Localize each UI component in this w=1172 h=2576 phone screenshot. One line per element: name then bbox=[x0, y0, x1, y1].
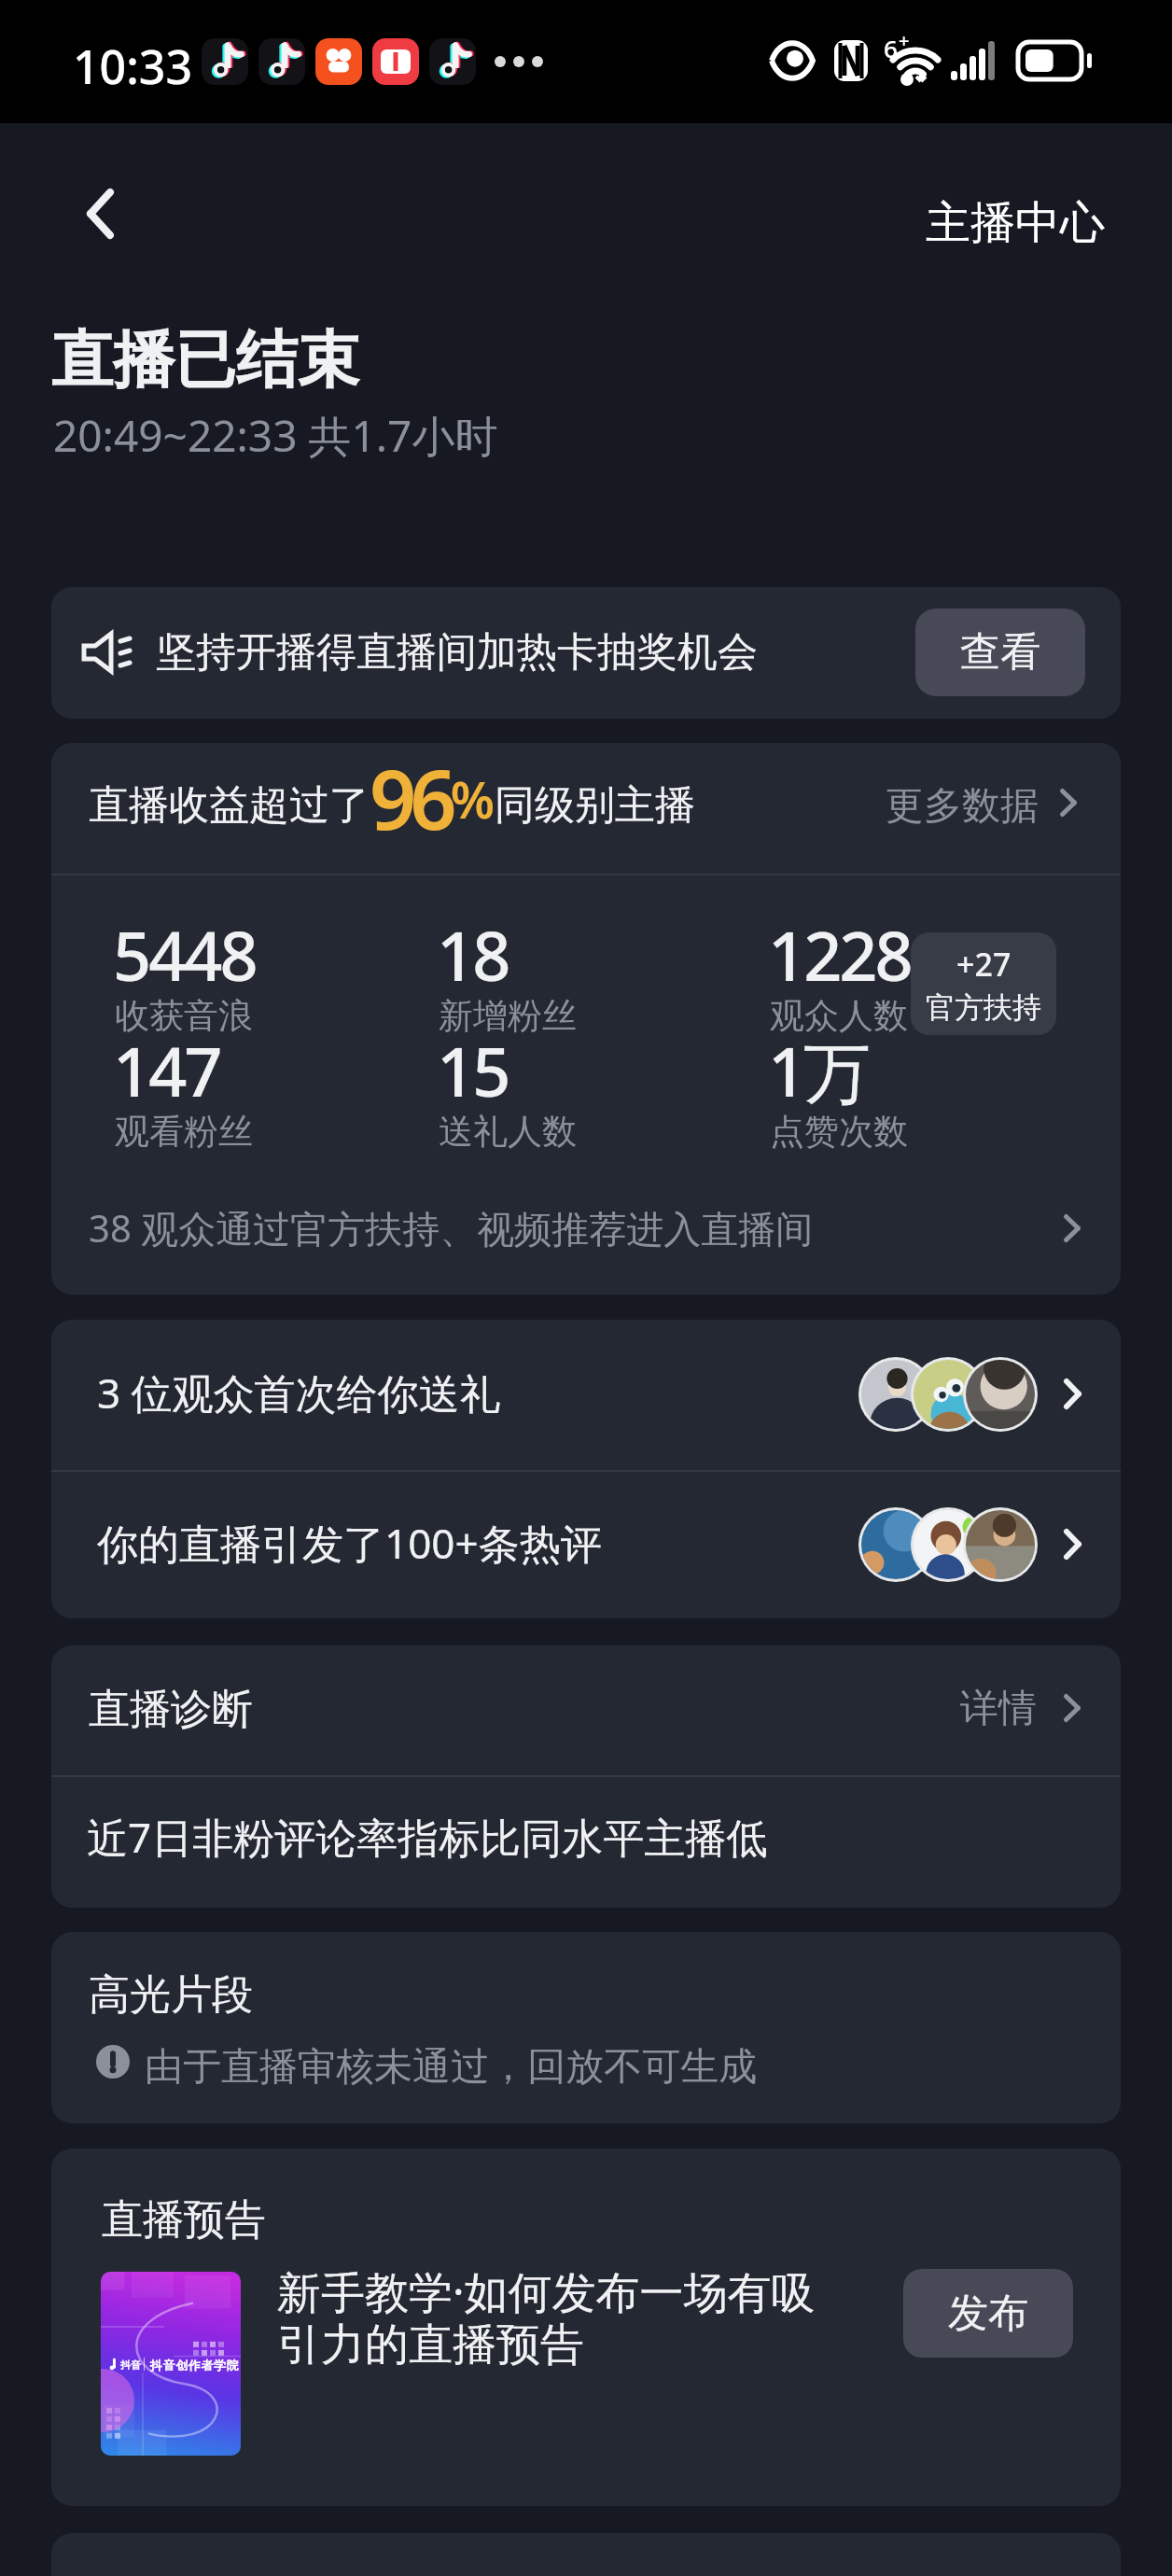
staticText: 官方扶持 bbox=[926, 989, 1041, 1026]
staticText: 3 位观众首次给你送礼 bbox=[97, 1365, 501, 1421]
staticText: + bbox=[899, 28, 910, 53]
staticText: 点赞次数 bbox=[770, 1110, 908, 1154]
staticText: 近7日非粉评论率指标比同水平主播低 bbox=[87, 1809, 768, 1865]
staticText: 发布 bbox=[948, 2289, 1028, 2339]
staticText: 主播中心 bbox=[926, 195, 1105, 251]
staticText: 直播预告 bbox=[102, 2194, 266, 2246]
staticText: 更多数据 bbox=[886, 782, 1039, 831]
staticText: 抖音创作者学院 bbox=[150, 2358, 240, 2373]
staticText: 你的直播引发了100+条热评 bbox=[97, 1515, 602, 1571]
staticText: 观看粉丝 bbox=[115, 1110, 253, 1154]
staticText: 1228 bbox=[768, 909, 911, 1001]
staticText: 1万 bbox=[768, 1025, 869, 1116]
button[interactable]: 查看 bbox=[915, 609, 1085, 696]
button[interactable]: 直播收益超过了96%同级别主播 bbox=[51, 743, 1121, 874]
button[interactable]: 发布 bbox=[903, 2269, 1073, 2358]
staticText: 抖音 bbox=[120, 2359, 141, 2372]
staticText: 18 bbox=[437, 909, 509, 1001]
staticText: +27 bbox=[956, 943, 1012, 986]
staticText: 38 观众通过官方扶持、视频推荐进入直播间 bbox=[89, 1202, 814, 1253]
staticText: 详情 bbox=[960, 1685, 1037, 1733]
button[interactable]: 主播中心 bbox=[926, 195, 1105, 251]
button[interactable]: Back bbox=[56, 174, 144, 254]
staticText: 10:33 bbox=[73, 35, 192, 98]
staticText: 高光片段 bbox=[89, 1969, 253, 2021]
button[interactable]: 你的直播引发了100+条热评 bbox=[51, 1472, 1121, 1618]
staticText: 观众人数 bbox=[770, 994, 908, 1038]
button[interactable]: 38 观众通过官方扶持、视频推荐进入直播间 bbox=[51, 1178, 1121, 1295]
staticText: 20:49~22:33 共1.7小时 bbox=[53, 406, 498, 465]
staticText: 查看 bbox=[960, 627, 1040, 678]
button[interactable]: 3 位观众首次给你送礼 bbox=[51, 1320, 1121, 1470]
staticText: 5448 bbox=[113, 909, 256, 1001]
staticText: 直播已结束 bbox=[51, 321, 359, 399]
staticText: 新增粉丝 bbox=[439, 994, 577, 1038]
button[interactable]: 坚持开播得直播间加热卡抽奖机会 bbox=[51, 587, 1121, 719]
button[interactable]: 高光片段 bbox=[51, 1932, 1121, 2123]
button[interactable]: 直播诊断 bbox=[51, 1645, 1121, 1775]
staticText: 6 bbox=[884, 32, 898, 64]
staticText: 直播诊断 bbox=[89, 1684, 253, 1735]
staticText: 15 bbox=[437, 1025, 509, 1116]
staticText: 坚持开播得直播间加热卡抽奖机会 bbox=[156, 627, 758, 678]
staticText: 直播收益超过了96%同级别主播 bbox=[89, 743, 695, 854]
staticText: 147 bbox=[113, 1025, 220, 1116]
staticText: 由于直播审核未通过，回放不可生成 bbox=[145, 2043, 757, 2092]
button[interactable]: 近7日非粉评论率指标比同水平主播低 bbox=[51, 1777, 1121, 1908]
staticText: 收获音浪 bbox=[115, 994, 253, 1038]
staticText: 送礼人数 bbox=[439, 1110, 577, 1154]
staticText: 新手教学·如何发布一场有吸 引力的直播预告 bbox=[277, 2261, 816, 2373]
